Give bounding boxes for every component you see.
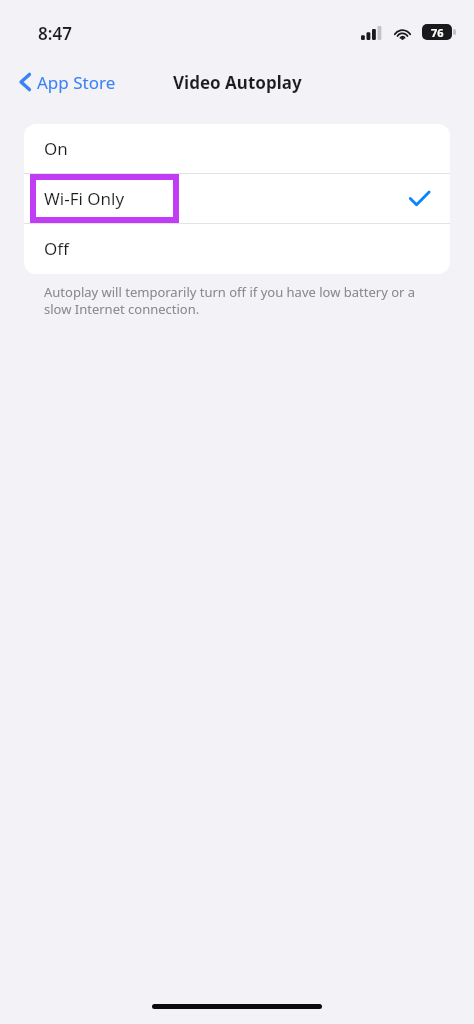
- staticText: Autoplay will temporarily turn off if yo…: [44, 283, 434, 318]
- staticText: App Store: [37, 71, 116, 94]
- staticText: 8:47: [38, 22, 72, 45]
- staticText: Video Autoplay: [173, 71, 302, 94]
- button[interactable]: Off: [24, 224, 450, 273]
- staticText: Off: [44, 237, 69, 260]
- button[interactable]: Wi-Fi Only: [24, 174, 450, 223]
- button[interactable]: App Store: [12, 62, 126, 102]
- button[interactable]: On: [24, 124, 450, 173]
- staticText: On: [44, 137, 68, 160]
- staticText: Wi-Fi Only: [44, 187, 125, 210]
- staticText: 76: [431, 25, 444, 40]
